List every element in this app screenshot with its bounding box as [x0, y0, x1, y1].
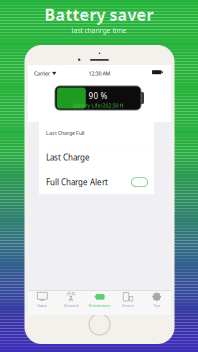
staticText: Maintenance	[88, 303, 110, 308]
staticText: Status	[37, 303, 47, 308]
staticText: Network	[63, 303, 78, 308]
staticText: Tips	[153, 303, 160, 308]
button[interactable]: Last Charge	[39, 144, 154, 170]
button[interactable]: Maintenance	[85, 290, 114, 315]
staticText: Carrier	[34, 70, 50, 77]
staticText: Full Charge Alert	[46, 177, 108, 187]
staticText: Last Charge Full	[46, 129, 84, 137]
button[interactable]: Last Charge Full	[39, 122, 154, 144]
staticText: Device	[122, 303, 134, 308]
button[interactable]: Tips	[142, 290, 171, 315]
staticText: 12:30 AM	[88, 70, 110, 77]
staticText: 90 %	[88, 91, 107, 101]
staticText: Last Charge	[46, 152, 90, 163]
button[interactable]: Status	[28, 290, 57, 315]
button[interactable]: Full Charge Alert	[39, 170, 154, 194]
button[interactable]: Device	[114, 290, 142, 315]
staticText: Battery saver	[44, 4, 153, 25]
button[interactable]: Network	[57, 290, 85, 315]
staticText: last chanrge time	[71, 26, 126, 35]
staticText: Battery Life/202.50 H	[72, 102, 123, 109]
